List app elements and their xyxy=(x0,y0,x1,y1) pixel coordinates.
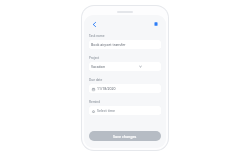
button[interactable]: More options xyxy=(151,19,161,29)
staticText: Task name xyxy=(89,34,105,38)
staticText: Book airport transfer xyxy=(91,42,126,47)
staticText: Select time xyxy=(97,108,116,113)
staticText: Remind xyxy=(89,100,101,104)
staticText: Save changes xyxy=(113,134,137,139)
button[interactable]: Select time xyxy=(89,106,161,115)
button[interactable]: Book airport transfer xyxy=(89,40,161,49)
button[interactable]: 11/18/2020 xyxy=(89,84,161,93)
staticText: Vacation xyxy=(91,64,106,69)
staticText: Project xyxy=(89,56,100,60)
staticText: 11/18/2020 xyxy=(97,86,116,91)
button[interactable]: Back xyxy=(89,19,99,29)
button[interactable]: Save changes xyxy=(89,131,161,141)
button[interactable]: Vacation xyxy=(89,62,161,71)
staticText: Due date xyxy=(89,78,103,82)
